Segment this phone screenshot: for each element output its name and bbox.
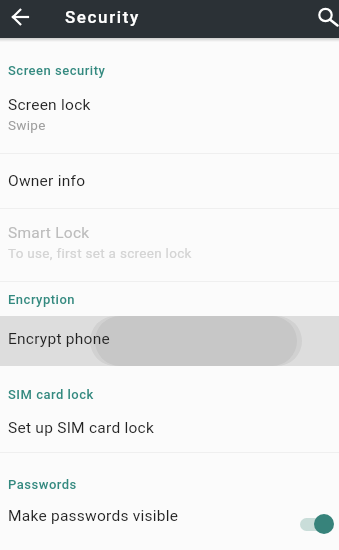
button[interactable] <box>307 0 339 38</box>
staticText: Passwords <box>8 477 77 492</box>
staticText: Screen security <box>8 63 106 78</box>
button[interactable]: Make passwords visible <box>0 492 339 550</box>
button[interactable]: Owner info <box>0 153 339 208</box>
staticText: To use, first set a screen lock <box>8 245 192 261</box>
staticText: Encrypt phone <box>8 330 110 348</box>
button[interactable]: Smart Lock <box>0 207 339 278</box>
staticText: Encryption <box>8 292 76 307</box>
staticText: Screen lock <box>8 96 91 114</box>
button[interactable]: Encrypt phone <box>0 316 339 366</box>
staticText: SIM card lock <box>8 387 94 402</box>
staticText: Security <box>65 7 140 27</box>
button[interactable]: Set up SIM card lock <box>0 404 339 452</box>
staticText: Swipe <box>8 117 46 133</box>
button[interactable]: Screen lock <box>0 82 339 146</box>
staticText: Make passwords visible <box>8 507 179 525</box>
button[interactable] <box>0 0 44 38</box>
staticText: Smart Lock <box>8 224 90 242</box>
staticText: Set up SIM card lock <box>8 419 155 437</box>
staticText: Owner info <box>8 172 86 190</box>
